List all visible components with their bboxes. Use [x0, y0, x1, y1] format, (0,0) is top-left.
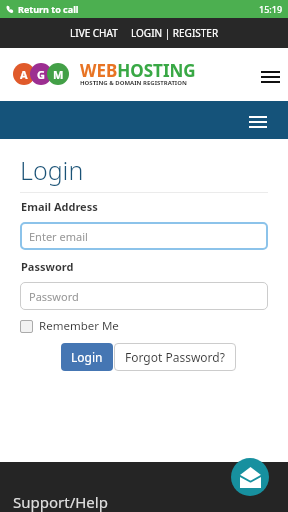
- staticText: HOSTING & DOMAIN REGISTRATION: [80, 79, 187, 87]
- staticText: Return to call: [18, 3, 79, 15]
- button[interactable]: Enter email: [20, 222, 268, 250]
- button[interactable]: [231, 458, 269, 496]
- staticText: Enter email: [29, 229, 88, 244]
- button[interactable]: Forgot Password?: [114, 343, 236, 371]
- staticText: Login: [20, 153, 84, 187]
- button[interactable]: LIVE CHAT: [70, 26, 118, 40]
- staticText: Remember Me: [39, 318, 119, 334]
- button[interactable]: Login: [61, 343, 113, 371]
- staticText: A: [20, 67, 28, 82]
- staticText: M: [53, 67, 64, 82]
- button[interactable]: [256, 66, 285, 88]
- staticText: Password: [29, 289, 79, 304]
- staticText: Email Address: [21, 199, 98, 214]
- staticText: G: [37, 67, 45, 82]
- button[interactable]: LOGIN | REGISTER: [131, 26, 219, 40]
- staticText: Password: [21, 259, 74, 274]
- staticText: Forgot Password?: [125, 349, 225, 365]
- staticText: Login: [71, 349, 103, 365]
- staticText: 15:19: [259, 3, 283, 15]
- staticText: WEBHOSTING: [80, 59, 196, 82]
- button[interactable]: Remember Me: [20, 318, 119, 334]
- button[interactable]: [244, 111, 272, 133]
- button[interactable]: Password: [20, 282, 268, 310]
- button[interactable]: Support/Help: [13, 492, 108, 512]
